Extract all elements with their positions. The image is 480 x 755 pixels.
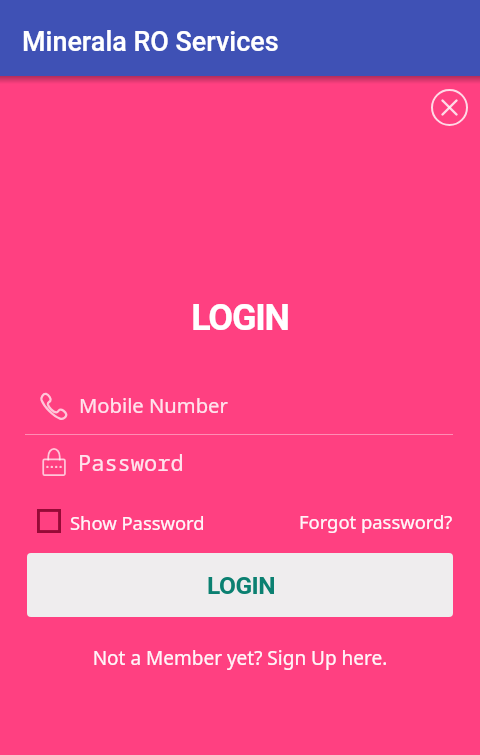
button[interactable]: Not a Member yet? Sign Up here.	[0, 645, 480, 671]
button[interactable]: Show Password	[37, 509, 205, 533]
staticText: Show Password	[70, 510, 205, 534]
button[interactable]: Forgot password?	[299, 509, 453, 534]
staticText: Mobile Number	[79, 391, 228, 419]
staticText: Password	[78, 447, 184, 477]
button[interactable]: Mobile Number	[39, 391, 453, 425]
staticText: LOGIN	[207, 571, 276, 600]
staticText: LOGIN	[0, 297, 480, 339]
button[interactable]: Password	[40, 447, 453, 481]
button[interactable]: Close	[425, 83, 474, 132]
staticText: Minerala RO Services	[22, 26, 279, 58]
button[interactable]: LOGIN	[27, 553, 453, 617]
